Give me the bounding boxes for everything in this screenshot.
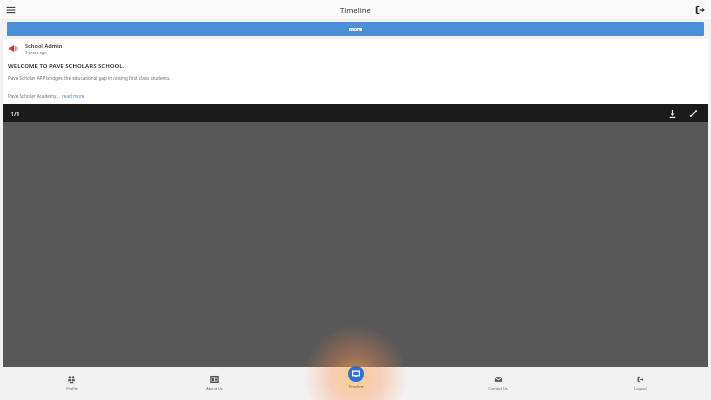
button[interactable]: read more	[62, 93, 85, 99]
staticText: Pave Scholar Academy...	[8, 93, 62, 99]
staticText: School Admin	[25, 42, 63, 49]
staticText: more	[349, 26, 363, 33]
staticText: Logout	[634, 386, 647, 391]
button[interactable]: Video	[3, 122, 708, 367]
button[interactable]: Logout	[569, 371, 711, 400]
button[interactable]: School Admin	[3, 39, 708, 104]
staticText: Pave Scholar APP bridges the educational…	[8, 75, 171, 81]
button[interactable]: Menu	[3, 2, 19, 18]
button[interactable]: Contact Us	[427, 371, 569, 400]
button[interactable]: About Us	[143, 371, 285, 400]
button[interactable]: Fullscreen	[687, 107, 700, 120]
staticText: 3 years ago	[25, 50, 47, 55]
staticText: Contact Us	[488, 386, 508, 391]
staticText: About Us	[206, 386, 223, 391]
button[interactable]: Download	[666, 107, 679, 120]
button[interactable]: Profile	[0, 371, 143, 400]
staticText: 1/1	[11, 110, 20, 117]
staticText: Timeline	[348, 384, 364, 389]
button[interactable]: Timeline	[348, 366, 364, 389]
button[interactable]: Logout	[693, 3, 707, 17]
staticText: WELCOME TO PAVE SCHOLARS SCHOOL.	[8, 62, 125, 70]
staticText: Timeline	[340, 5, 371, 15]
button[interactable]: more	[7, 22, 704, 36]
staticText: Profile	[66, 386, 78, 391]
